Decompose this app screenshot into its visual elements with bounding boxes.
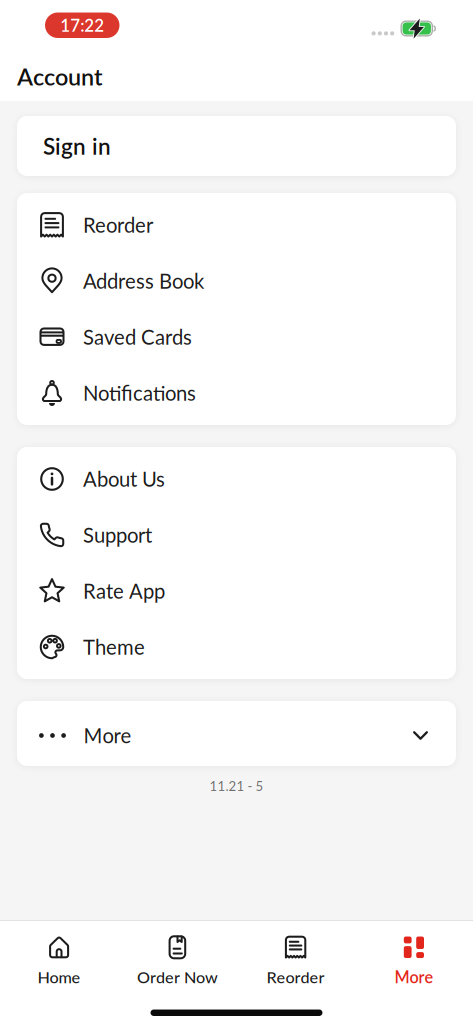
- button[interactable]: Home: [0, 935, 118, 987]
- button[interactable]: Theme: [17, 619, 456, 675]
- staticText: Support: [83, 523, 152, 547]
- staticText: Sign in: [43, 132, 111, 159]
- button[interactable]: Order Now: [118, 935, 236, 987]
- button[interactable]: Rate App: [17, 563, 456, 619]
- button[interactable]: Reorder: [236, 935, 355, 987]
- staticText: Order Now: [137, 967, 218, 987]
- button[interactable]: Sign in: [17, 116, 456, 176]
- staticText: 11.21 - 5: [209, 778, 263, 794]
- staticText: Rate App: [83, 579, 165, 603]
- button[interactable]: About Us: [17, 451, 456, 507]
- staticText: Reorder: [83, 213, 153, 237]
- staticText: Reorder: [267, 967, 325, 987]
- staticText: More: [83, 723, 131, 748]
- staticText: About Us: [83, 467, 165, 491]
- staticText: More: [394, 967, 433, 987]
- button[interactable]: Address Book: [17, 253, 456, 309]
- button[interactable]: More: [17, 701, 456, 766]
- staticText: Address Book: [83, 269, 204, 293]
- button[interactable]: Recording indicator: [45, 12, 119, 38]
- staticText: Home: [38, 967, 81, 987]
- button[interactable]: Saved Cards: [17, 309, 456, 365]
- button[interactable]: Support: [17, 507, 456, 563]
- button[interactable]: Reorder: [17, 197, 456, 253]
- staticText: Saved Cards: [83, 325, 192, 349]
- staticText: Account: [17, 62, 103, 91]
- staticText: 17:22: [60, 15, 104, 35]
- button[interactable]: Notifications: [17, 365, 456, 421]
- staticText: Notifications: [83, 381, 196, 405]
- button[interactable]: More: [355, 935, 473, 987]
- staticText: Theme: [83, 635, 145, 659]
